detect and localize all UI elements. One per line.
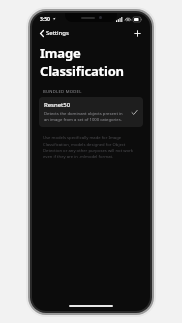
staticText: Use models specifically made for Image C…: [43, 135, 140, 159]
staticText: Resnet50: [44, 101, 71, 109]
button[interactable]: Add model: [131, 27, 144, 40]
staticText: Detects the dominant objects present in …: [44, 111, 127, 123]
staticText: 3:50: [40, 16, 50, 23]
button[interactable]: Resnet50: [39, 97, 143, 127]
staticText: Image Classification: [40, 44, 144, 80]
staticText: Settings: [46, 29, 69, 37]
staticText: BUNDLED MODEL: [43, 89, 82, 95]
button[interactable]: Settings: [38, 27, 71, 39]
